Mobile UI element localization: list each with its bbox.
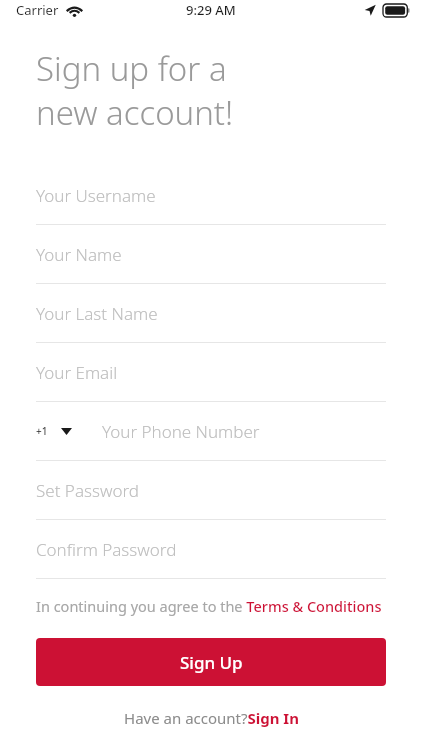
staticText: Your Phone Number [102,420,260,443]
button[interactable]: Your Email [36,343,386,402]
staticText: Set Password [36,479,139,502]
staticText: Sign up for a new account! [36,46,234,134]
staticText: Your Name [36,243,122,266]
staticText: Carrier [16,1,59,19]
staticText: 9:29 AM [186,1,236,19]
staticText: Sign Up [180,651,243,674]
button[interactable]: In continuing you agree to the Terms & C… [36,596,386,616]
staticText: Your Username [36,184,156,207]
staticText: Have an account?Sign In [124,708,299,728]
button[interactable]: Your Username [36,166,386,225]
staticText: Your Last Name [36,302,158,325]
staticText: In continuing you agree to the Terms & C… [36,596,382,616]
button[interactable]: Your Name [36,225,386,284]
button[interactable]: Your Last Name [36,284,386,343]
button[interactable]: +1 [36,402,386,461]
staticText: Your Email [36,361,118,384]
button[interactable]: Sign Up [36,638,386,686]
staticText: Confirm Password [36,538,177,561]
staticText: +1 [36,424,48,438]
button[interactable]: Set Password [36,461,386,520]
button[interactable]: Confirm Password [36,520,386,579]
button[interactable]: Have an account?Sign In [36,708,386,728]
other: Select country code [61,428,72,435]
